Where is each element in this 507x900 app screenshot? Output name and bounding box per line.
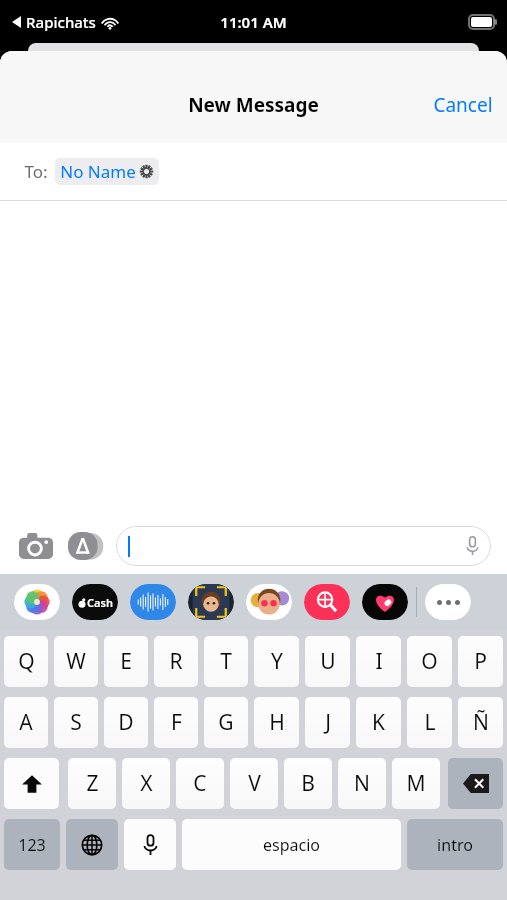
button[interactable]: iMessage app: [425, 584, 471, 620]
button[interactable]: T: [204, 636, 248, 687]
staticText: M: [406, 769, 426, 798]
staticText: I: [375, 647, 383, 676]
staticText: D: [118, 708, 134, 737]
button[interactable]: R: [154, 636, 198, 687]
button[interactable]: X: [122, 758, 170, 809]
button[interactable]: iMessage app: [14, 584, 60, 620]
button[interactable]: Change keyboard: [66, 819, 118, 870]
staticText: Cash: [87, 595, 113, 610]
button[interactable]: iMessage app: [246, 584, 292, 620]
button[interactable]: Cancel: [419, 84, 507, 126]
button[interactable]: P: [458, 636, 503, 687]
button[interactable]: iMessage app: [130, 584, 176, 620]
staticText: J: [325, 708, 331, 737]
button[interactable]: Dictate: [124, 819, 176, 870]
button[interactable]: [116, 526, 491, 566]
staticText: P: [474, 647, 487, 676]
button[interactable]: V: [230, 758, 278, 809]
staticText: espacio: [263, 834, 320, 856]
staticText: O: [421, 647, 438, 676]
button[interactable]: Backspace: [448, 758, 503, 809]
button[interactable]: S: [54, 697, 98, 748]
button[interactable]: Ñ: [458, 697, 503, 748]
button[interactable]: Shift: [4, 758, 59, 809]
button[interactable]: E: [104, 636, 148, 687]
button[interactable]: U: [305, 636, 350, 687]
button[interactable]: iMessage app: [188, 584, 234, 620]
staticText: T: [220, 647, 232, 676]
staticText: 123: [18, 834, 46, 856]
button[interactable]: W: [54, 636, 98, 687]
button[interactable]: A: [4, 697, 48, 748]
button[interactable]: N: [338, 758, 386, 809]
staticText: Cancel: [433, 92, 493, 118]
button[interactable]: J: [305, 697, 350, 748]
button[interactable]: C: [176, 758, 224, 809]
staticText: H: [269, 708, 285, 737]
button[interactable]: Z: [68, 758, 116, 809]
staticText: K: [372, 708, 385, 737]
button[interactable]: iMessage app: [72, 584, 118, 620]
button[interactable]: G: [204, 697, 248, 748]
staticText: Z: [86, 769, 99, 798]
staticText: 11:01 AM: [220, 12, 287, 32]
button[interactable]: Rapichats: [10, 12, 120, 32]
staticText: E: [120, 647, 132, 676]
staticText: G: [218, 708, 234, 737]
staticText: intro: [437, 834, 473, 856]
button[interactable]: H: [254, 697, 299, 748]
staticText: No Name: [60, 160, 136, 183]
staticText: New Message: [188, 92, 319, 118]
staticText: Rapichats: [26, 12, 96, 32]
button[interactable]: intro: [407, 819, 503, 870]
staticText: A: [19, 708, 33, 737]
staticText: W: [66, 647, 86, 676]
button[interactable]: B: [284, 758, 332, 809]
staticText: R: [169, 647, 183, 676]
staticText: C: [193, 769, 207, 798]
button[interactable]: F: [154, 697, 198, 748]
button[interactable]: O: [407, 636, 452, 687]
button[interactable]: D: [104, 697, 148, 748]
button[interactable]: M: [392, 758, 440, 809]
staticText: Y: [271, 647, 283, 676]
staticText: F: [171, 708, 182, 737]
button[interactable]: L: [407, 697, 452, 748]
staticText: S: [70, 708, 82, 737]
button[interactable]: No Name: [55, 158, 159, 185]
button[interactable]: I: [356, 636, 401, 687]
button[interactable]: K: [356, 697, 401, 748]
button[interactable]: Camera: [16, 526, 56, 566]
staticText: Ñ: [473, 708, 489, 737]
button[interactable]: Q: [4, 636, 48, 687]
button[interactable]: Numbers: [4, 819, 60, 870]
staticText: To:: [24, 160, 48, 183]
staticText: U: [320, 647, 336, 676]
button[interactable]: App Store: [66, 526, 106, 566]
button[interactable]: espacio: [182, 819, 401, 870]
staticText: L: [424, 708, 436, 737]
button[interactable]: Y: [254, 636, 299, 687]
staticText: B: [301, 769, 315, 798]
staticText: Q: [18, 647, 35, 676]
button[interactable]: iMessage app: [362, 584, 408, 620]
staticText: V: [248, 769, 261, 798]
staticText: X: [140, 769, 153, 798]
staticText: N: [354, 769, 370, 798]
button[interactable]: iMessage app: [304, 584, 350, 620]
